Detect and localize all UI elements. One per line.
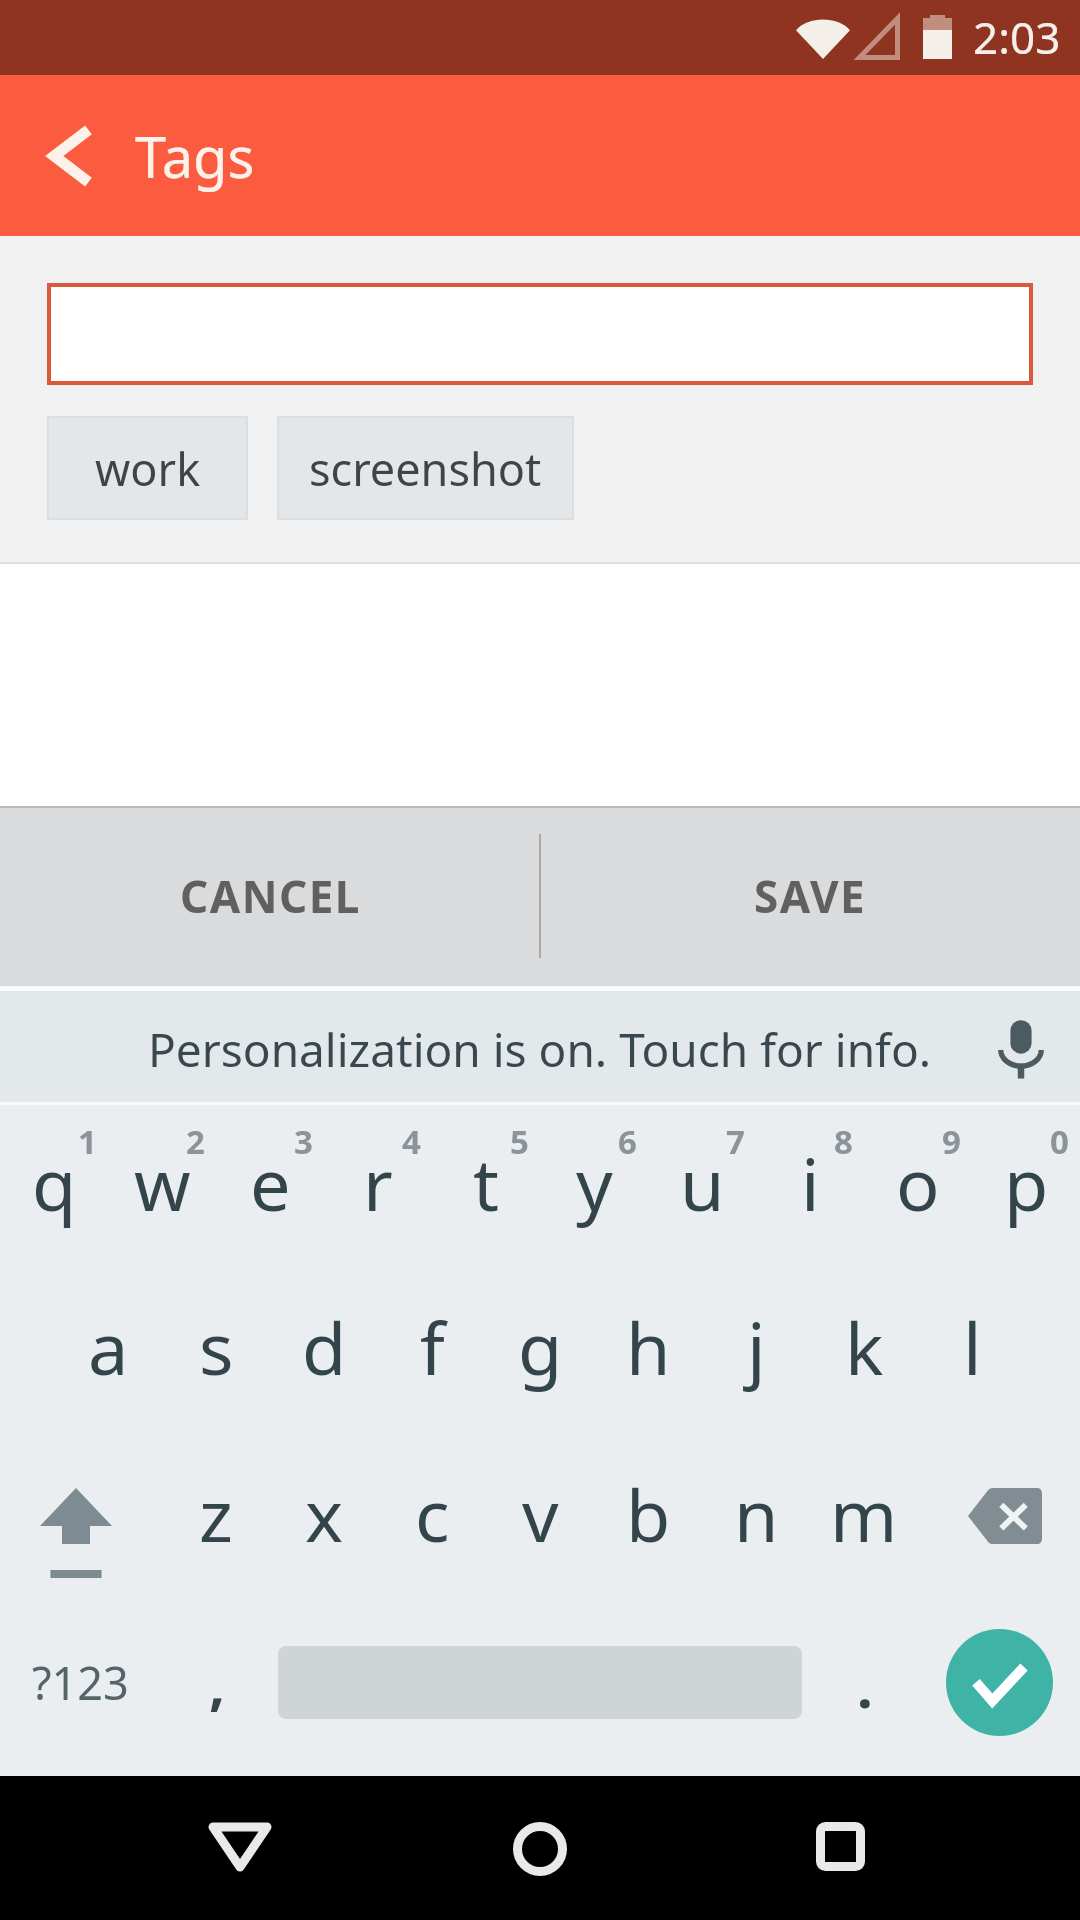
button[interactable]: c [378,1438,486,1601]
button[interactable]: b [594,1438,702,1601]
button[interactable]: Shift [0,1438,162,1601]
staticText: g [518,1298,563,1396]
staticText: l [963,1298,982,1396]
button[interactable]: 7 [648,1112,756,1275]
staticText: t [473,1134,499,1232]
button[interactable] [47,283,1033,385]
button[interactable]: n [702,1438,810,1601]
staticText: q [32,1134,77,1232]
staticText: h [626,1298,671,1396]
staticText: v [522,1465,559,1563]
staticText: r [363,1134,393,1232]
staticText: e [250,1134,291,1232]
staticText: p [1004,1134,1049,1232]
staticText: x [305,1465,344,1563]
staticText: 9 [942,1119,961,1164]
button[interactable]: 1 [0,1112,108,1275]
staticText: u [680,1134,725,1232]
button[interactable]: d [270,1275,378,1438]
staticText: i [801,1134,820,1232]
staticText: c [415,1465,450,1563]
button[interactable]: Voice input [983,1012,1059,1088]
staticText: . [857,1648,873,1724]
button[interactable]: SAVE [540,806,1080,986]
button[interactable]: Back [150,1776,330,1920]
staticText: CANCEL [180,866,361,926]
button[interactable]: j [702,1275,810,1438]
button[interactable]: l [918,1275,1026,1438]
staticText: 0 [1050,1119,1069,1164]
button[interactable]: 3 [216,1112,324,1275]
button[interactable]: 9 [864,1112,972,1275]
staticText: ?123 [32,1652,129,1713]
staticText: n [734,1465,779,1563]
staticText: , [209,1645,225,1721]
button[interactable]: 4 [324,1112,432,1275]
button[interactable]: 6 [540,1112,648,1275]
staticText: 4 [402,1119,421,1164]
staticText: w [134,1134,191,1232]
staticText: Personalization is on. Touch for info. [148,1018,932,1081]
button[interactable]: v [486,1438,594,1601]
staticText: o [896,1134,940,1232]
button[interactable]: . [802,1601,928,1764]
button[interactable]: work [47,416,248,520]
staticText: j [747,1298,766,1396]
staticText: work [95,438,201,499]
button[interactable]: ?123 [0,1601,160,1764]
button[interactable]: x [270,1438,378,1601]
button[interactable]: Backspace [918,1438,1080,1601]
button[interactable]: 2 [108,1112,216,1275]
button[interactable]: f [378,1275,486,1438]
staticText: y [576,1134,613,1232]
button[interactable]: s [162,1275,270,1438]
staticText: 6 [618,1119,637,1164]
staticText: 7 [726,1119,745,1164]
staticText: b [626,1465,671,1563]
button[interactable]: CANCEL [0,806,540,986]
button[interactable]: 5 [432,1112,540,1275]
staticText: Tags [135,118,255,194]
button[interactable]: screenshot [277,416,574,520]
staticText: SAVE [754,866,867,926]
button[interactable]: Back [22,108,118,204]
button[interactable]: Home [450,1776,630,1920]
staticText: a [88,1298,129,1396]
button[interactable]: 8 [756,1112,864,1275]
button[interactable]: g [486,1275,594,1438]
button[interactable]: z [162,1438,270,1601]
staticText: d [302,1298,347,1396]
staticText: z [199,1465,233,1563]
staticText: m [830,1465,898,1563]
button[interactable]: 0 [972,1112,1080,1275]
button[interactable]: m [810,1438,918,1601]
button[interactable]: , [160,1601,278,1764]
button[interactable]: a [54,1275,162,1438]
button[interactable]: k [810,1275,918,1438]
staticText: 1 [78,1119,97,1164]
staticText: 8 [834,1119,853,1164]
staticText: k [845,1298,884,1396]
button[interactable]: Done [946,1629,1053,1736]
staticText: 2 [186,1119,205,1164]
staticText: 5 [510,1119,529,1164]
staticText: 2:03 [973,7,1061,67]
button[interactable]: h [594,1275,702,1438]
staticText: s [199,1298,234,1396]
staticText: f [420,1298,445,1396]
staticText: 3 [294,1119,313,1164]
button[interactable]: Recents [750,1776,930,1920]
staticText: screenshot [309,438,542,499]
